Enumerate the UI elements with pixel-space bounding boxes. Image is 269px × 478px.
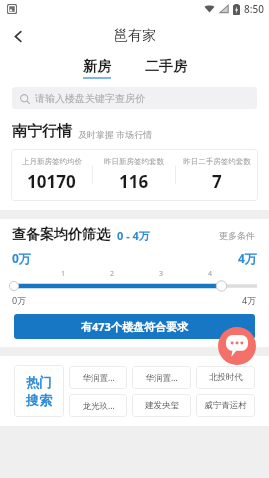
staticText: 搜索 [26,392,52,408]
button[interactable]: 请输入楼盘关键字查房价 [12,87,257,109]
staticText: 更多条件 [219,230,255,241]
button[interactable]: 更多条件 [217,228,257,243]
staticText: 上月新房签约均价 [22,157,82,166]
staticText: 二手房 [145,58,187,76]
staticText: 北投时代 [209,372,243,383]
staticText: 0万 [12,294,27,306]
button[interactable]: Chat [218,327,256,365]
staticText: 10170 [27,170,76,193]
staticText: 华润置… [145,372,178,384]
button[interactable]: 华润置… [69,366,127,389]
button[interactable]: 北投时代 [196,366,255,389]
button[interactable]: 热门 [14,365,64,417]
staticText: 7 [212,170,222,193]
staticText: 116 [119,170,149,193]
button[interactable]: 新房 [79,56,115,81]
staticText: 威宁青运村 [204,400,247,411]
button[interactable]: 威宁青运村 [196,394,255,417]
staticText: 昨日二手房签约套数 [183,157,251,166]
staticText: 1 [61,269,66,279]
staticText: 查备案均价筛选 [12,226,110,244]
staticText: 邕有家 [114,27,156,45]
staticText: 及时掌握 市场行情 [78,128,153,140]
staticText: 4 [208,269,213,279]
button[interactable]: 龙光玖… [69,394,127,417]
staticText: 华润置… [82,372,115,384]
staticText: 8:50 [244,2,264,16]
staticText: 4万 [242,294,257,306]
staticText: 4万 [238,250,257,266]
staticText: 热门 [26,374,52,390]
staticText: 0 - 4万 [117,228,150,243]
staticText: 0万 [12,250,31,266]
staticText: 建发央玺 [145,400,179,411]
staticText: 昨日新房签约套数 [104,157,164,166]
staticText: 新房 [83,58,111,76]
staticText: 请输入楼盘关键字查房价 [35,92,145,105]
staticText: 有473个楼盘符合要求 [81,319,188,334]
staticText: 3 [159,269,164,279]
button[interactable]: 二手房 [141,56,191,81]
staticText: 2 [110,269,115,279]
button[interactable]: 上月新房签约均价 [11,157,258,193]
staticText: 龙光玖… [82,400,115,412]
button[interactable]: 建发央玺 [132,394,191,417]
button[interactable]: 华润置… [132,366,191,389]
button[interactable]: Price range slider [12,280,257,292]
button[interactable]: 有473个楼盘符合要求 [14,314,255,339]
staticText: 南宁行情 [12,122,72,141]
button[interactable]: Back [0,18,36,54]
